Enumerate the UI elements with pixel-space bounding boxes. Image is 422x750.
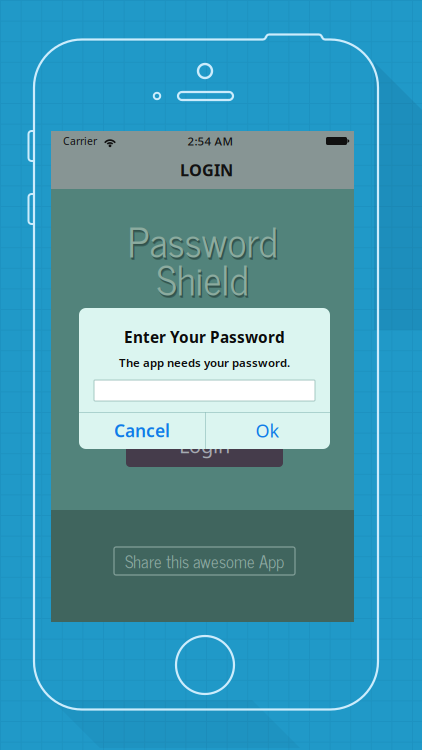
staticText: Share this awesome App: [125, 547, 284, 575]
button[interactable]: Login: [126, 424, 283, 467]
staticText: Ok: [255, 418, 279, 443]
staticText: Login: [179, 432, 230, 459]
staticText: Password: [127, 207, 277, 273]
staticText: LOGIN: [180, 159, 233, 181]
staticText: Carrier: [63, 134, 97, 148]
staticText: 2:54 AM: [187, 133, 233, 149]
staticText: Shield: [158, 248, 250, 313]
staticText: Password: [128, 209, 278, 274]
staticText: Shield: [156, 245, 248, 311]
button[interactable]: Share this awesome App: [114, 547, 295, 575]
staticText: Cancel: [114, 419, 170, 442]
staticText: The app needs your password.: [119, 355, 290, 370]
button[interactable]: Cancel: [79, 412, 205, 449]
staticText: Shield: [157, 247, 249, 312]
button[interactable]: Ok: [205, 412, 330, 449]
staticText: Password: [129, 210, 279, 275]
staticText: Enter Your Password: [124, 327, 285, 347]
